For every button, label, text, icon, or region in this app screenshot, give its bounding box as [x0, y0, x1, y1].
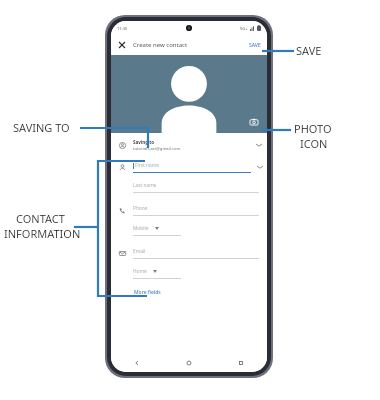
staticText: PHOTO [294, 121, 332, 136]
button[interactable]: Saving to [111, 133, 267, 157]
button[interactable]: More fields [133, 287, 162, 298]
button[interactable]: First name [111, 157, 267, 177]
button[interactable]: Email [111, 243, 267, 263]
staticText: Saving to [133, 139, 155, 145]
button[interactable]: Close [116, 39, 128, 51]
button[interactable]: SAVE [247, 40, 263, 51]
button[interactable]: Mobile [111, 220, 267, 240]
staticText: INFORMATION [4, 226, 81, 241]
staticText: Last name [133, 182, 157, 189]
staticText: Phone [133, 205, 148, 212]
staticText: SAVING TO [13, 120, 70, 135]
button[interactable]: Home [163, 354, 215, 372]
button[interactable]: Phone [111, 200, 267, 220]
button[interactable]: Photo icon [248, 116, 260, 128]
staticText: Mobile [133, 225, 149, 232]
staticText: 5G+ [240, 26, 248, 31]
staticText: ICON [300, 136, 328, 151]
staticText: More fields [134, 289, 161, 296]
staticText: 11:35 [117, 26, 128, 31]
button[interactable]: Home [111, 263, 267, 283]
staticText: SAVE [249, 42, 261, 49]
staticText: SAVE [296, 43, 322, 58]
staticText: Create new contact [133, 41, 188, 49]
staticText: Email [133, 248, 146, 255]
staticText: Home [133, 268, 147, 275]
staticText: First name [135, 162, 159, 169]
staticText: CONTACT [16, 211, 65, 226]
button[interactable]: Last name [111, 177, 267, 197]
button[interactable]: Back [111, 354, 163, 372]
staticText: tutorials.art@gmail.com [133, 146, 181, 152]
button[interactable]: Recents [215, 354, 267, 372]
